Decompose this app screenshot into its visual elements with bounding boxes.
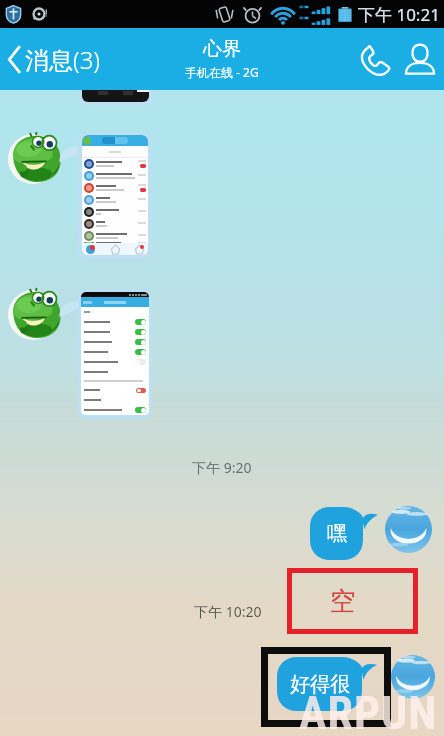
staticText: 心界 (203, 37, 241, 61)
staticText: 下午 10:21 (358, 3, 440, 26)
button[interactable]: Image message (78, 90, 153, 106)
staticText: 手机在线 - 2G (185, 64, 259, 80)
staticText: 下午 9:20 (192, 458, 252, 477)
button[interactable]: 好得很 (277, 657, 362, 711)
button[interactable]: 嘿 (310, 507, 363, 560)
staticText: 嘿 (327, 521, 347, 546)
button[interactable]: Call (353, 35, 397, 83)
staticText: 消息(3) (25, 43, 100, 76)
staticText: ARPUN (299, 686, 438, 736)
button[interactable]: Profile (398, 35, 442, 83)
staticText: 好得很 (290, 672, 350, 697)
button[interactable]: Image message (78, 289, 152, 419)
button[interactable]: 消息(3) (0, 35, 110, 84)
staticText: 下午 10:20 (194, 602, 262, 621)
staticText: 空 (330, 585, 356, 618)
button[interactable]: Image message (78, 132, 152, 259)
